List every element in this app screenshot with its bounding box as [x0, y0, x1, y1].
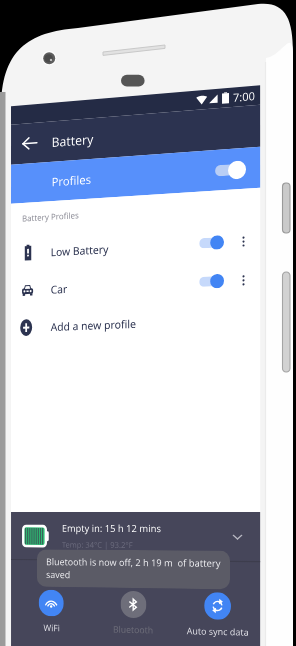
staticText: Temp: 34°C | 93.2°F — [62, 539, 133, 550]
staticText: Battery Profiles — [22, 209, 80, 225]
button[interactable]: Add a new profile — [11, 299, 260, 346]
staticText: Auto sync data — [186, 624, 249, 638]
staticText: Battery — [52, 130, 94, 151]
button[interactable]: More options — [230, 227, 256, 255]
staticText: WiFi — [43, 621, 60, 633]
button[interactable]: Navigate up — [11, 122, 49, 165]
button[interactable]: Low Battery — [11, 221, 260, 272]
button[interactable]: Expand details — [224, 523, 250, 550]
staticText: Bluetooth — [113, 623, 153, 635]
staticText: 7:00 — [233, 88, 255, 105]
staticText: Add a new profile — [51, 316, 137, 334]
button[interactable]: More options — [230, 266, 256, 294]
button[interactable]: WiFi — [11, 560, 92, 646]
button[interactable]: Auto sync data — [175, 561, 260, 646]
staticText: Low Battery — [51, 241, 109, 259]
button[interactable]: Empty in: 15 h 12 mins — [11, 512, 260, 561]
staticText: Car — [51, 281, 67, 297]
staticText: Empty in: 15 h 12 mins — [62, 522, 162, 535]
button[interactable]: Car — [11, 260, 260, 309]
staticText: Profiles — [52, 171, 92, 189]
button[interactable]: Profiles — [11, 147, 260, 204]
staticText: Bluetooth is now off, 2 h 19 m of batter… — [46, 555, 222, 583]
button[interactable]: Bluetooth — [92, 561, 175, 646]
